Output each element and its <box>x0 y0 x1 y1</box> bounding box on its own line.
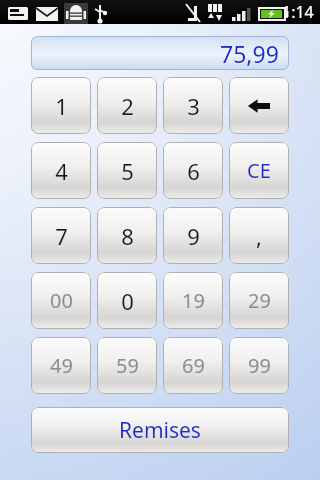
staticText: Remises <box>119 416 201 445</box>
button[interactable]: 49 <box>31 337 91 394</box>
staticText: 00 <box>50 287 73 314</box>
button[interactable]: 99 <box>229 337 289 394</box>
button[interactable]: 8 <box>97 207 157 264</box>
button[interactable]: Remises <box>31 407 289 453</box>
staticText: 4 <box>55 156 68 186</box>
button[interactable]: , <box>229 207 289 264</box>
button[interactable]: 59 <box>97 337 157 394</box>
button[interactable]: Backspace <box>229 77 289 134</box>
button[interactable]: 0 <box>97 272 157 329</box>
button[interactable]: 4 <box>31 142 91 199</box>
staticText: 1:14 <box>282 1 314 23</box>
staticText: , <box>256 221 262 251</box>
staticText: 6 <box>187 156 200 186</box>
staticText: 49 <box>50 352 73 379</box>
button[interactable]: 5 <box>97 142 157 199</box>
button[interactable]: 7 <box>31 207 91 264</box>
staticText: 5 <box>121 156 134 186</box>
button[interactable]: 19 <box>163 272 223 329</box>
staticText: 19 <box>182 287 205 314</box>
staticText: 59 <box>116 352 139 379</box>
button[interactable]: 6 <box>163 142 223 199</box>
staticText: 99 <box>248 352 271 379</box>
staticText: 8 <box>121 221 134 251</box>
button[interactable]: 1 <box>31 77 91 134</box>
staticText: 0 <box>121 286 134 316</box>
button[interactable]: 29 <box>229 272 289 329</box>
button[interactable]: 3 <box>163 77 223 134</box>
staticText: 75,99 <box>220 38 279 69</box>
staticText: 29 <box>248 287 271 314</box>
staticText: CE <box>247 157 271 184</box>
staticText: 2 <box>121 91 134 121</box>
staticText: 7 <box>55 221 68 251</box>
button[interactable]: 69 <box>163 337 223 394</box>
button[interactable]: 9 <box>163 207 223 264</box>
button[interactable]: 00 <box>31 272 91 329</box>
staticText: 69 <box>182 352 205 379</box>
button[interactable]: CE <box>229 142 289 199</box>
staticText: 9 <box>187 221 200 251</box>
button[interactable]: 75,99 <box>31 36 289 70</box>
button[interactable]: 2 <box>97 77 157 134</box>
staticText: 1 <box>55 91 68 121</box>
staticText: 3 <box>187 91 200 121</box>
